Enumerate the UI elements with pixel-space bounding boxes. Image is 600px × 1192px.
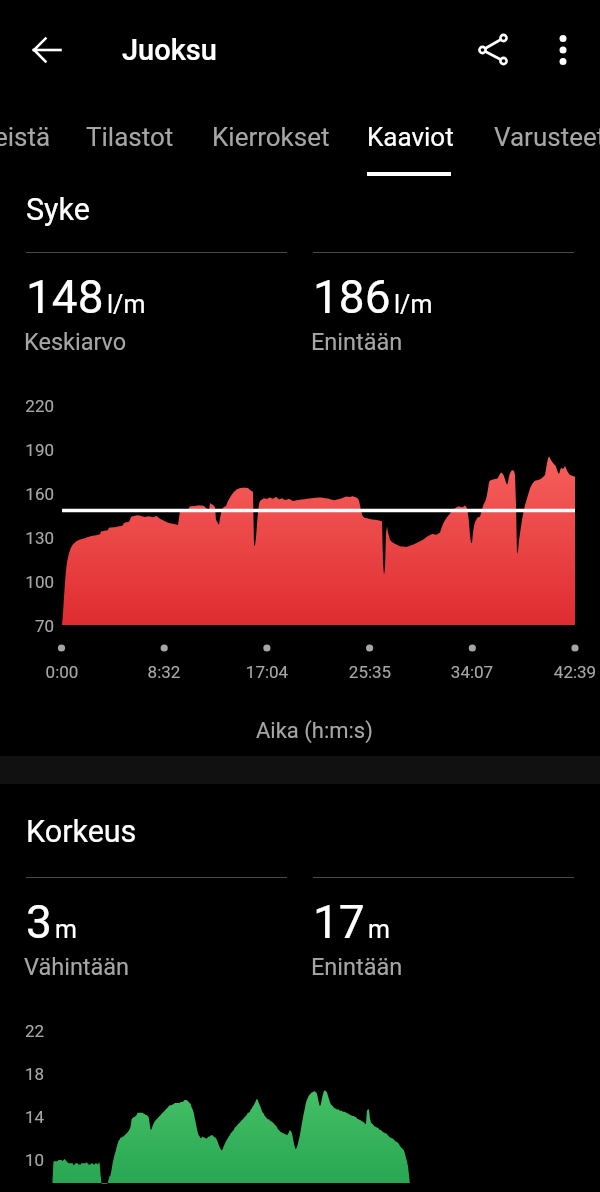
staticText: 100 xyxy=(0,572,54,592)
staticText: 10 xyxy=(0,1150,44,1170)
button[interactable]: Back xyxy=(19,22,75,78)
button[interactable]: Varusteet xyxy=(475,98,600,178)
button[interactable]: Yleistä xyxy=(0,98,69,178)
staticText: Aika (h:m:s) xyxy=(256,718,373,744)
staticText: Enintään xyxy=(311,328,403,356)
staticText: Vähintään xyxy=(24,953,130,981)
button[interactable]: Tilastot xyxy=(67,98,194,178)
staticText: 186 xyxy=(313,270,391,324)
staticText: 190 xyxy=(0,440,54,460)
staticText: Kaaviot xyxy=(367,122,454,152)
button[interactable]: Kaaviot xyxy=(348,98,474,178)
staticText: 8:32 xyxy=(114,662,214,682)
staticText: 22 xyxy=(0,1021,44,1041)
staticText: 17 xyxy=(313,895,365,949)
staticText: 70 xyxy=(0,616,54,636)
button[interactable]: Kierrokset xyxy=(193,98,351,178)
staticText: 18 xyxy=(0,1064,44,1084)
staticText: 220 xyxy=(0,396,54,416)
staticText: m xyxy=(368,915,390,944)
staticText: Korkeus xyxy=(26,814,137,850)
staticText: l/m xyxy=(394,290,433,319)
staticText: Juoksu xyxy=(122,33,217,67)
staticText: Varusteet xyxy=(494,122,600,152)
staticText: 148 xyxy=(26,270,104,324)
button[interactable]: Share xyxy=(465,22,521,78)
staticText: 34:07 xyxy=(422,662,522,682)
button[interactable]: More options xyxy=(535,22,591,78)
staticText: 130 xyxy=(0,528,54,548)
staticText: Tilastot xyxy=(86,122,174,152)
staticText: 160 xyxy=(0,484,54,504)
staticText: Enintään xyxy=(311,953,403,981)
staticText: 25:35 xyxy=(320,662,420,682)
staticText: 0:00 xyxy=(12,662,112,682)
staticText: 14 xyxy=(0,1107,44,1127)
staticText: l/m xyxy=(107,290,146,319)
staticText: Syke xyxy=(26,192,90,228)
staticText: 42:39 xyxy=(525,662,600,682)
staticText: 3 xyxy=(26,895,52,949)
staticText: m xyxy=(55,915,77,944)
staticText: 17:04 xyxy=(217,662,317,682)
staticText: Kierrokset xyxy=(212,122,330,152)
staticText: Keskiarvo xyxy=(24,328,127,356)
staticText: Yleistä xyxy=(0,122,51,152)
